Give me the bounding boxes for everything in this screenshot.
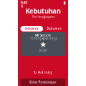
staticText: Perlengkapan [31,14,54,19]
staticText: ‹ [21,1,23,10]
staticText: Informasi [25,27,39,30]
staticText: Dokumen [47,27,62,30]
button[interactable]: Dokumen [43,26,65,31]
button[interactable]: Kirim Permintaan [20,78,65,86]
staticText: Muat ulang [37,71,52,74]
staticText: ★ [39,40,46,49]
staticText: ▮ [63,0,65,5]
staticText: ↻ [33,70,36,75]
staticText: MH Saleem [35,34,51,37]
staticText: Kebutuhan [25,7,60,15]
button[interactable]: Informasi [20,26,43,31]
staticText: Detail [39,49,47,52]
staticText: 9:41 [20,0,27,5]
button[interactable]: ↻ [20,70,65,75]
staticText: Perlengkapan Kerja [29,37,56,40]
button[interactable]: Back [19,3,24,8]
staticText: Kirim Permintaan [29,81,56,84]
